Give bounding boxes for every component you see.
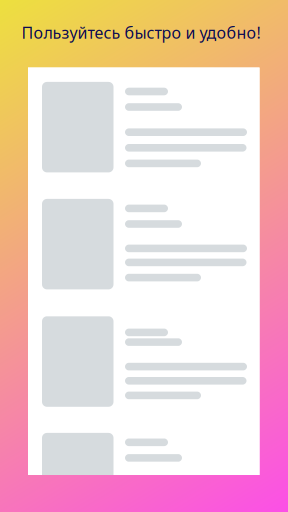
staticText: Пользуйтесь быстро и удобно! bbox=[21, 22, 260, 43]
